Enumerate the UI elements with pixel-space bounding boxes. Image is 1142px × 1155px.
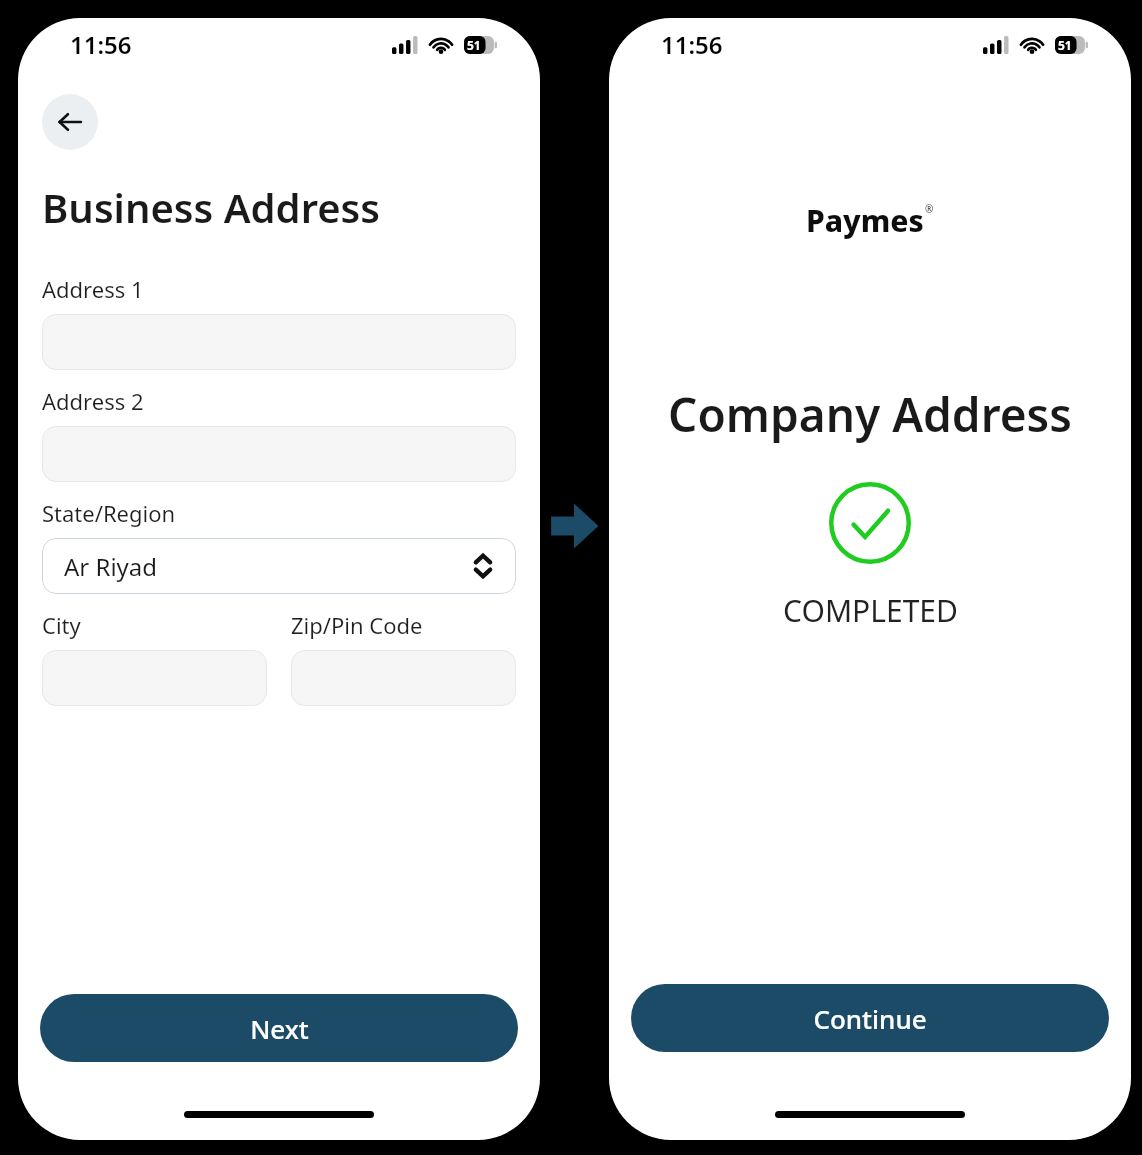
staticText: Business Address bbox=[42, 180, 381, 234]
staticText: State/Region bbox=[42, 498, 176, 528]
staticText: Next bbox=[250, 1011, 309, 1046]
staticText: Company Address bbox=[668, 383, 1072, 446]
button[interactable] bbox=[42, 314, 516, 370]
staticText: 51 bbox=[1058, 37, 1072, 53]
staticText: Continue bbox=[813, 1001, 927, 1036]
staticText: Address 2 bbox=[42, 386, 144, 416]
button[interactable]: Continue bbox=[631, 984, 1109, 1052]
staticText: Ar Riyad bbox=[64, 550, 158, 583]
button[interactable] bbox=[291, 650, 516, 706]
staticText: Paymes bbox=[806, 200, 924, 241]
staticText: City bbox=[42, 610, 81, 640]
button[interactable]: Ar Riyad bbox=[42, 538, 516, 594]
button[interactable] bbox=[42, 650, 267, 706]
staticText: COMPLETED bbox=[783, 590, 958, 631]
staticText: ® bbox=[925, 202, 934, 216]
button[interactable]: Next bbox=[40, 994, 518, 1062]
staticText: 11:56 bbox=[70, 28, 132, 61]
button[interactable]: Back bbox=[42, 94, 98, 150]
staticText: 11:56 bbox=[661, 28, 723, 61]
staticText: Zip/Pin Code bbox=[291, 610, 423, 640]
staticText: 51 bbox=[467, 37, 481, 53]
staticText: Address 1 bbox=[42, 274, 144, 304]
button[interactable] bbox=[42, 426, 516, 482]
